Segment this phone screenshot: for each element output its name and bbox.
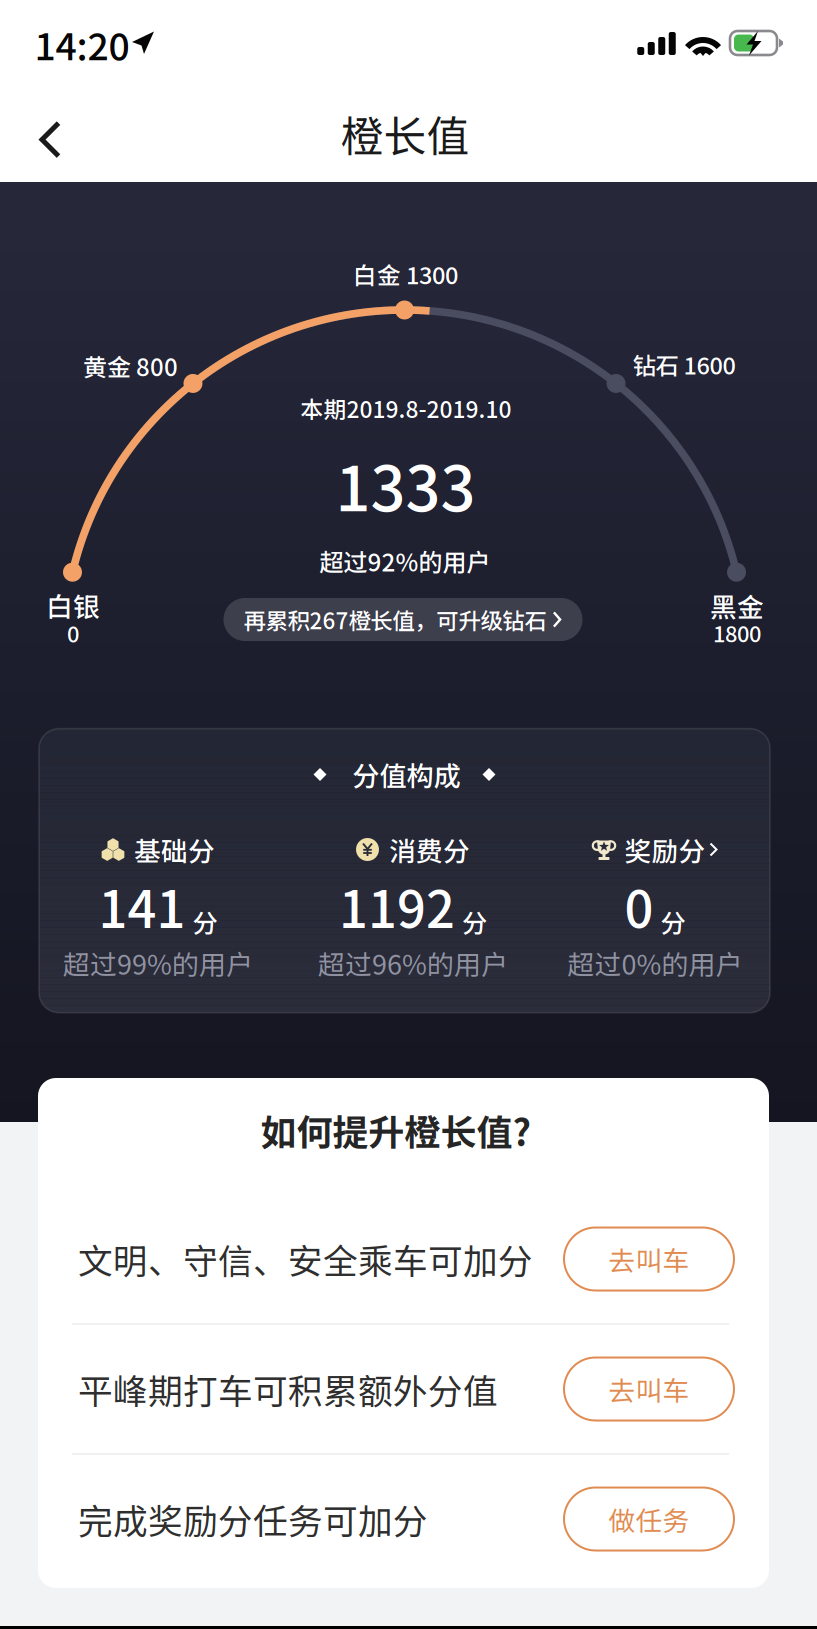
staticText: 基础分 xyxy=(134,830,215,869)
staticText: 141 xyxy=(98,869,185,943)
staticText: 0 xyxy=(624,869,653,943)
staticText: 如何提升橙长值? xyxy=(260,1104,531,1156)
staticText: 去叫车 xyxy=(608,1370,689,1408)
staticText: 去叫车 xyxy=(608,1240,689,1278)
staticText: 再累积267橙长值，可升级钻石 xyxy=(243,603,546,636)
staticText: 平峰期打车可积累额外分值 xyxy=(78,1364,498,1414)
staticText: 黄金 800 xyxy=(83,348,178,383)
button[interactable]: 去叫车 xyxy=(564,1227,734,1290)
staticText: 分 xyxy=(192,903,217,940)
staticText: 超过99%的用户 xyxy=(63,943,253,982)
staticText: 做任务 xyxy=(608,1500,689,1538)
staticText: 超过96%的用户 xyxy=(318,943,508,982)
staticText: 分 xyxy=(660,903,685,940)
button[interactable]: 去叫车 xyxy=(564,1357,734,1420)
staticText: 1192 xyxy=(339,869,455,943)
staticText: 超过0%的用户 xyxy=(567,943,742,982)
staticText: 黑金 xyxy=(710,586,764,625)
staticText: 完成奖励分任务可加分 xyxy=(78,1494,428,1544)
staticText: 本期2019.8-2019.10 xyxy=(300,391,511,424)
staticText: 白金 1300 xyxy=(353,257,458,291)
button[interactable]: 做任务 xyxy=(564,1487,734,1550)
staticText: 超过92%的用户 xyxy=(319,543,490,578)
button[interactable]: 再累积267橙长值，可升级钻石 xyxy=(223,598,582,641)
staticText: 1800 xyxy=(713,617,761,649)
staticText: 1333 xyxy=(335,440,475,529)
staticText: 消费分 xyxy=(389,830,470,869)
button[interactable]: 返回 xyxy=(5,98,89,182)
staticText: 白银 xyxy=(46,586,100,624)
staticText: 14:20 xyxy=(34,17,129,71)
staticText: 文明、守信、安全乘车可加分 xyxy=(78,1234,533,1284)
staticText: 奖励分 xyxy=(624,830,705,869)
staticText: 橙长值 xyxy=(340,103,469,164)
staticText: 0 xyxy=(67,617,79,649)
staticText: 钻石 1600 xyxy=(632,347,735,381)
staticText: 分值构成 xyxy=(352,755,460,794)
staticText: 分 xyxy=(462,903,487,940)
